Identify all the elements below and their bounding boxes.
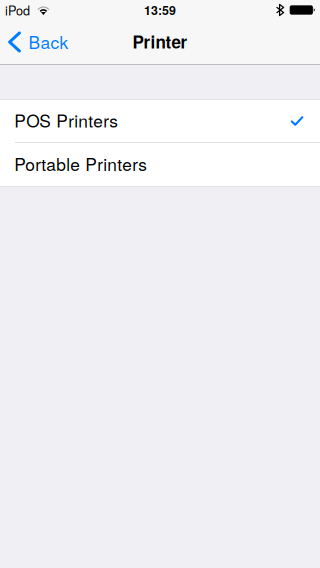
button[interactable]: Back (0, 20, 78, 64)
button[interactable]: Portable Printers (0, 143, 320, 186)
staticText: POS Printers (14, 108, 118, 132)
staticText: iPod (5, 1, 30, 19)
staticText: 13:59 (144, 1, 176, 19)
staticText: Printer (132, 29, 187, 54)
staticText: Portable Printers (14, 151, 147, 176)
staticText: Back (28, 29, 68, 54)
button[interactable]: POS Printers (0, 100, 320, 142)
